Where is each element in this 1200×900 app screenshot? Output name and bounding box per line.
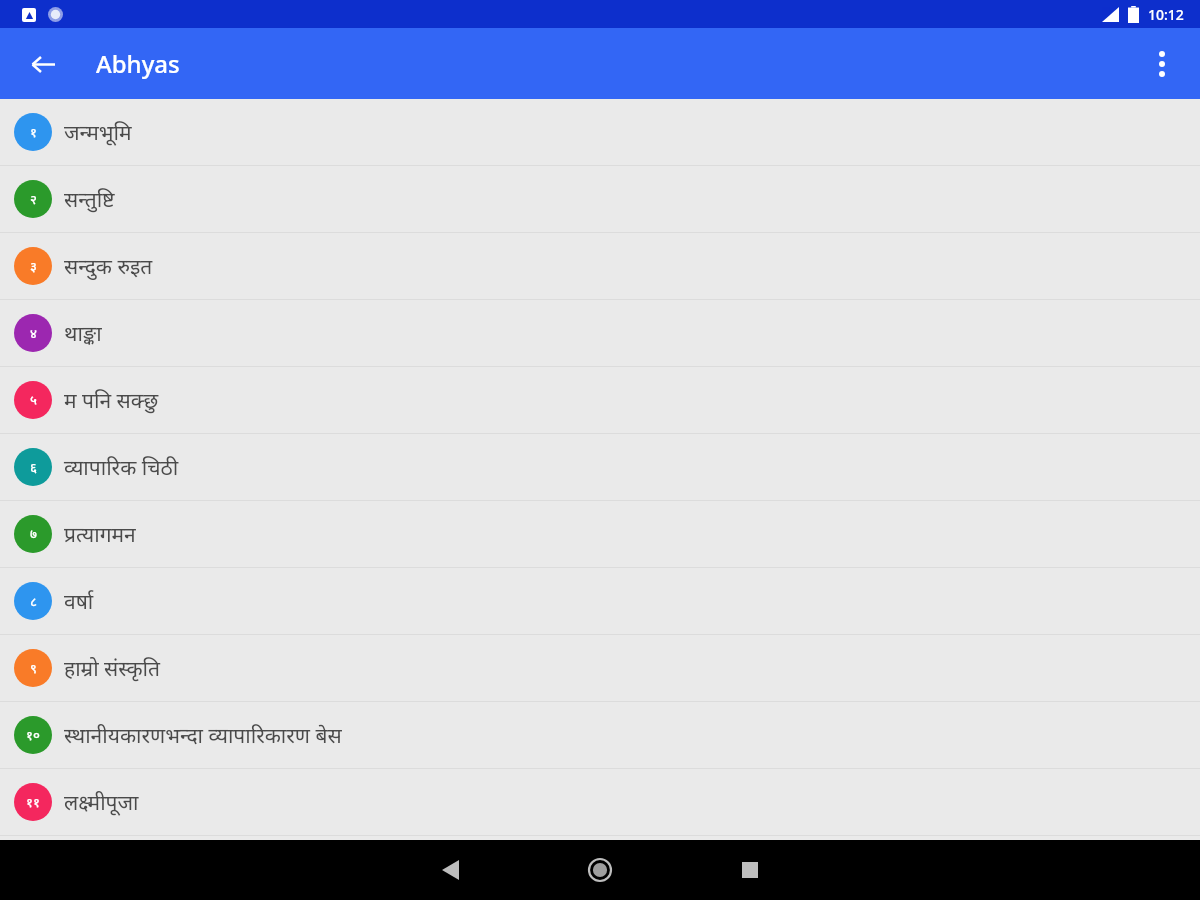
button[interactable]: १० bbox=[0, 702, 1200, 768]
button[interactable]: ७ bbox=[0, 501, 1200, 567]
button[interactable]: ३ bbox=[0, 233, 1200, 299]
button[interactable]: Back bbox=[426, 846, 474, 894]
staticText: ४ bbox=[30, 324, 37, 342]
button[interactable]: Back bbox=[20, 41, 66, 87]
staticText: ५ bbox=[30, 391, 37, 409]
button[interactable]: ८ bbox=[0, 568, 1200, 634]
staticText: थाङ्का bbox=[64, 319, 102, 348]
staticText: सन्दुक रुइत bbox=[64, 252, 153, 281]
staticText: वर्षा bbox=[64, 587, 94, 616]
button[interactable]: ११ bbox=[0, 769, 1200, 835]
staticText: सन्तुष्टि bbox=[64, 185, 115, 214]
staticText: ६ bbox=[30, 458, 37, 476]
button[interactable]: ९ bbox=[0, 635, 1200, 701]
button[interactable]: ६ bbox=[0, 434, 1200, 500]
button[interactable]: २ bbox=[0, 166, 1200, 232]
staticText: म पनि सक्छु bbox=[64, 386, 159, 415]
staticText: हाम्रो संस्कृति bbox=[64, 654, 160, 683]
staticText: ३ bbox=[30, 257, 37, 275]
button[interactable]: ५ bbox=[0, 367, 1200, 433]
staticText: प्रत्यागमन bbox=[64, 520, 136, 549]
button[interactable]: ४ bbox=[0, 300, 1200, 366]
button[interactable]: More options bbox=[1138, 40, 1186, 88]
staticText: जन्मभूमि bbox=[64, 118, 132, 147]
button[interactable]: Recents bbox=[726, 846, 774, 894]
staticText: स्थानीयकारणभन्दा व्यापारिकारण बेस bbox=[64, 721, 342, 750]
button[interactable]: १ bbox=[0, 99, 1200, 165]
staticText: व्यापारिक चिठी bbox=[64, 453, 179, 482]
staticText: ११ bbox=[26, 793, 40, 811]
staticText: 10:12 bbox=[1148, 5, 1184, 24]
button[interactable]: Home bbox=[576, 846, 624, 894]
staticText: ८ bbox=[30, 592, 37, 610]
staticText: १ bbox=[30, 123, 37, 141]
staticText: ७ bbox=[30, 525, 37, 543]
staticText: लक्ष्मीपूजा bbox=[64, 788, 139, 817]
staticText: २ bbox=[30, 190, 37, 208]
staticText: १० bbox=[26, 726, 40, 744]
staticText: Abhyas bbox=[96, 47, 180, 80]
staticText: ९ bbox=[30, 659, 37, 677]
